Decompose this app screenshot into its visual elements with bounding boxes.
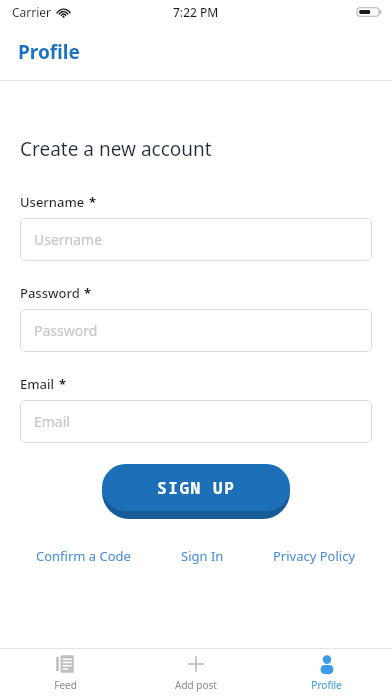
button[interactable]: Username	[20, 218, 372, 261]
staticText: Profile	[18, 39, 80, 65]
staticText: Confirm a Code	[36, 547, 131, 565]
staticText: 7:22 PM	[173, 4, 219, 20]
staticText: Privacy Policy	[273, 547, 356, 565]
staticText: *	[59, 375, 67, 393]
button[interactable]: SIGN UP	[102, 464, 290, 519]
button[interactable]: Add post	[130, 649, 261, 696]
staticText: Sign In	[181, 547, 224, 565]
button[interactable]: Privacy Policy	[271, 543, 358, 569]
staticText: Username	[34, 230, 103, 249]
staticText: Carrier	[12, 4, 52, 20]
staticText: Email	[20, 375, 55, 393]
staticText: *	[84, 284, 92, 302]
staticText: Profile	[311, 678, 342, 692]
staticText: Create a new account	[20, 136, 212, 162]
staticText: Feed	[54, 678, 77, 692]
staticText: SIGN UP	[157, 477, 236, 499]
staticText: *	[89, 193, 97, 211]
staticText: Add post	[175, 678, 217, 692]
button[interactable]: Email	[20, 400, 372, 443]
staticText: Username	[20, 193, 85, 211]
staticText: Email	[34, 412, 70, 431]
button[interactable]: Sign In	[179, 543, 226, 569]
button[interactable]: Confirm a Code	[34, 543, 133, 569]
staticText: Password	[20, 284, 80, 302]
button[interactable]: Profile	[261, 649, 392, 696]
button[interactable]: Feed	[0, 649, 130, 696]
button[interactable]: Password	[20, 309, 372, 352]
staticText: Password	[34, 321, 98, 340]
